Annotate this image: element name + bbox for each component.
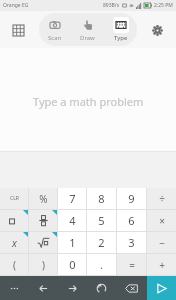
- staticText: Draw: [80, 34, 95, 42]
- button[interactable]: CLR: [0, 188, 28, 209]
- staticText: =: [129, 258, 135, 272]
- staticText: Type a math problem: [33, 94, 144, 109]
- staticText: +: [159, 258, 165, 272]
- staticText: 4: [69, 213, 76, 228]
- button[interactable]: Backspace: [117, 276, 146, 300]
- button[interactable]: ×: [147, 210, 176, 231]
- button[interactable]: Calculator: [5, 17, 31, 43]
- button[interactable]: 2: [87, 232, 116, 253]
- button[interactable]: 7: [58, 188, 86, 209]
- staticText: 9: [128, 191, 135, 206]
- staticText: 6: [128, 213, 135, 228]
- button[interactable]: x: [0, 232, 28, 253]
- button[interactable]: Power: [0, 210, 28, 231]
- staticText: 2:25 PM: [154, 2, 173, 9]
- staticText: Orange EG: [3, 2, 29, 9]
- staticText: 8: [98, 191, 105, 206]
- staticText: ): [42, 258, 45, 272]
- button[interactable]: −: [147, 232, 176, 253]
- staticText: 0: [69, 257, 76, 272]
- staticText: (: [13, 258, 16, 272]
- button[interactable]: 5: [87, 210, 116, 231]
- staticText: Scan: [48, 34, 62, 42]
- button[interactable]: Fraction: [29, 210, 57, 231]
- staticText: %: [39, 192, 48, 206]
- staticText: 7: [69, 191, 76, 206]
- staticText: 2: [98, 235, 105, 250]
- staticText: 3: [128, 235, 135, 250]
- staticText: CLR: [10, 195, 19, 202]
- button[interactable]: +: [147, 254, 176, 275]
- button[interactable]: .: [87, 254, 116, 275]
- button[interactable]: Square root: [29, 232, 57, 253]
- button[interactable]: 4: [58, 210, 86, 231]
- button[interactable]: ÷: [147, 188, 176, 209]
- button[interactable]: =: [117, 254, 146, 275]
- staticText: 1: [69, 235, 76, 250]
- button[interactable]: More: [0, 276, 28, 300]
- staticText: Type: [114, 34, 128, 42]
- button[interactable]: 8: [87, 188, 116, 209]
- button[interactable]: Left: [29, 276, 57, 300]
- staticText: 893B/s: [103, 2, 120, 9]
- button[interactable]: ): [29, 254, 57, 275]
- staticText: x: [12, 236, 17, 250]
- staticText: 5: [98, 213, 105, 228]
- button[interactable]: Draw: [71, 13, 104, 46]
- staticText: ×: [159, 214, 165, 228]
- button[interactable]: (: [0, 254, 28, 275]
- staticText: .: [100, 258, 103, 272]
- button[interactable]: 0: [58, 254, 86, 275]
- button[interactable]: Undo: [87, 276, 116, 300]
- button[interactable]: 3: [117, 232, 146, 253]
- button[interactable]: 9: [117, 188, 146, 209]
- button[interactable]: 6: [117, 210, 146, 231]
- button[interactable]: Type: [104, 13, 137, 46]
- button[interactable]: Right: [58, 276, 86, 300]
- button[interactable]: Scan: [39, 13, 71, 46]
- button[interactable]: 1: [58, 232, 86, 253]
- button[interactable]: %: [29, 188, 57, 209]
- button[interactable]: Settings: [144, 17, 170, 43]
- button[interactable]: Submit: [147, 276, 176, 300]
- staticText: ÷: [159, 192, 165, 206]
- staticText: −: [159, 236, 165, 250]
